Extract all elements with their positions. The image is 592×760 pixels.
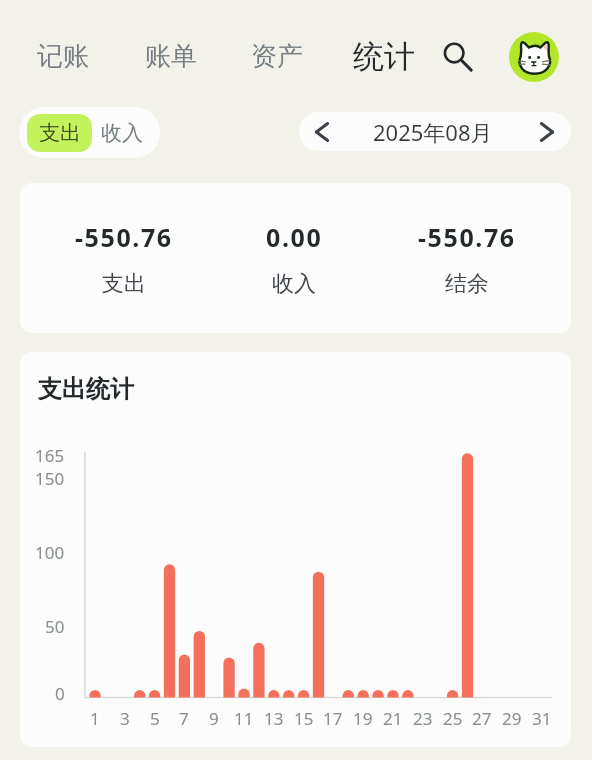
button[interactable]: 收入 <box>92 114 152 152</box>
staticText: 15 <box>294 707 314 730</box>
staticText: 100 <box>35 541 65 561</box>
staticText: 统计 <box>353 37 415 76</box>
staticText: 账单 <box>145 40 197 73</box>
staticText: 9 <box>209 707 219 730</box>
staticText: 5 <box>150 707 160 730</box>
staticText: 25 <box>443 707 463 730</box>
staticText: 21 <box>383 707 403 730</box>
button[interactable]: 0.00 <box>214 220 374 298</box>
button[interactable]: Search <box>438 36 476 74</box>
staticText: 165 <box>35 444 65 464</box>
staticText: 收入 <box>101 120 143 146</box>
staticText: 7 <box>179 707 189 730</box>
button[interactable]: -550.76 <box>387 220 547 298</box>
staticText: 150 <box>35 467 65 487</box>
button[interactable]: 账单 <box>145 40 197 73</box>
staticText: 29 <box>502 707 522 730</box>
button[interactable]: Next month <box>522 112 571 151</box>
staticText: 3 <box>120 707 130 730</box>
button[interactable]: 支出 <box>27 114 92 152</box>
button[interactable]: 资产 <box>251 40 303 73</box>
staticText: 记账 <box>37 40 89 73</box>
staticText: 资产 <box>251 40 303 73</box>
staticText: 13 <box>264 707 284 730</box>
staticText: 31 <box>532 707 552 730</box>
staticText: 结余 <box>445 270 489 298</box>
button[interactable]: 统计 <box>353 37 415 76</box>
staticText: 支出 <box>39 120 81 146</box>
staticText: 支出统计 <box>38 374 134 404</box>
staticText: 0 <box>55 682 65 702</box>
button[interactable]: Previous month <box>299 112 344 151</box>
staticText: 50 <box>45 615 65 635</box>
staticText: 1 <box>90 707 100 730</box>
staticText: 23 <box>413 707 433 730</box>
staticText: 19 <box>353 707 373 730</box>
staticText: -550.76 <box>418 220 516 254</box>
staticText: 11 <box>234 707 254 730</box>
staticText: 0.00 <box>266 220 323 254</box>
staticText: 收入 <box>272 270 316 298</box>
staticText: 支出 <box>102 270 146 298</box>
staticText: 27 <box>472 707 492 730</box>
staticText: 17 <box>323 707 343 730</box>
button[interactable]: 记账 <box>37 40 89 73</box>
staticText: -550.76 <box>75 220 173 254</box>
button[interactable]: Profile <box>509 32 559 82</box>
staticText: 2025年08月 <box>373 117 493 147</box>
button[interactable]: -550.76 <box>44 220 204 298</box>
